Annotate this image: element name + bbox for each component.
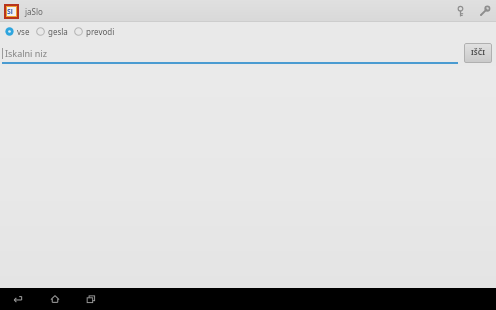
- staticText: IŠČI: [471, 48, 485, 58]
- staticText: Slo: [7, 7, 16, 16]
- button[interactable]: Password: [448, 0, 472, 22]
- staticText: vse: [17, 26, 30, 37]
- button[interactable]: vse: [4, 25, 31, 38]
- button[interactable]: Settings: [472, 0, 496, 22]
- button[interactable]: IŠČI: [464, 43, 492, 63]
- staticText: prevodi: [86, 26, 115, 37]
- staticText: jaSlo: [25, 6, 43, 17]
- button[interactable]: prevodi: [73, 25, 116, 38]
- button[interactable]: Home: [42, 288, 68, 310]
- button[interactable]: Recent apps: [78, 288, 104, 310]
- staticText: gesla: [48, 26, 68, 37]
- staticText: Iskalni niz: [5, 47, 47, 59]
- button[interactable]: Iskalni niz: [2, 42, 458, 64]
- button[interactable]: Back: [6, 288, 32, 310]
- button[interactable]: App icon, navigate up: [3, 3, 20, 20]
- button[interactable]: gesla: [35, 25, 69, 38]
